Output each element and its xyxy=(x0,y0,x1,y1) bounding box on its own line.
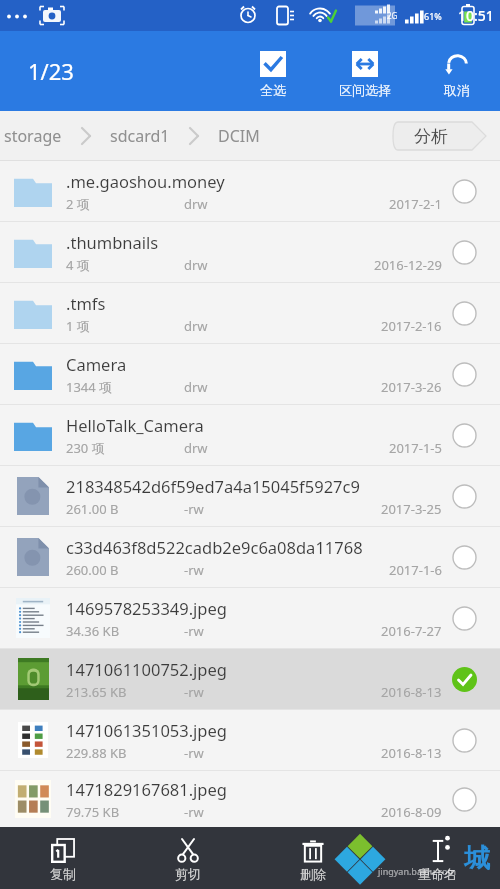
staticText: Camera xyxy=(66,353,127,375)
staticText: 260.00 B xyxy=(66,561,119,579)
staticText: -rw xyxy=(184,500,204,518)
button[interactable]: Selected xyxy=(442,657,486,701)
staticText: 取消 xyxy=(444,82,470,98)
staticText: 229.88 KB xyxy=(66,744,127,762)
staticText: .thumbnails xyxy=(66,231,159,253)
button[interactable]: 取消 xyxy=(414,31,500,111)
button[interactable]: Select xyxy=(442,291,486,335)
button[interactable]: storage xyxy=(0,125,66,147)
staticText: 2 项 xyxy=(66,195,90,213)
staticText: 79.75 KB xyxy=(66,803,120,821)
staticText: drw xyxy=(184,439,208,457)
staticText: 230 项 xyxy=(66,439,105,457)
button[interactable]: .tmfs xyxy=(0,283,500,343)
staticText: .tmfs xyxy=(66,292,106,314)
button[interactable]: 218348542d6f59ed7a4a15045f5927c9 xyxy=(0,466,500,526)
button[interactable]: Select xyxy=(442,230,486,274)
staticText: 213.65 KB xyxy=(66,683,127,701)
staticText: 全选 xyxy=(260,82,286,98)
button[interactable]: Cut xyxy=(125,827,250,889)
button[interactable]: Copy xyxy=(0,827,125,889)
staticText: 2016-7-27 xyxy=(381,622,442,640)
staticText: 删除 xyxy=(300,866,326,882)
staticText: .me.gaoshou.money xyxy=(66,170,225,192)
staticText: 2017-2-16 xyxy=(381,317,442,335)
staticText: 61% xyxy=(424,10,442,22)
staticText: 重命名 xyxy=(418,866,457,882)
staticText: 218348542d6f59ed7a4a15045f5927c9 xyxy=(66,475,360,497)
button[interactable]: 1471061351053.jpeg xyxy=(0,710,500,770)
staticText: drw xyxy=(184,195,208,213)
button[interactable]: Select xyxy=(442,352,486,396)
button[interactable]: 1469578253349.jpeg xyxy=(0,588,500,648)
staticText: 4 项 xyxy=(66,256,90,274)
staticText: 10:51 xyxy=(458,6,494,25)
button[interactable]: sdcard1 xyxy=(106,125,174,147)
staticText: 城 xyxy=(464,842,490,875)
staticText: 2017-2-1 xyxy=(389,195,442,213)
button[interactable]: Camera xyxy=(0,344,500,404)
button[interactable]: Rename xyxy=(375,827,500,889)
staticText: 1469578253349.jpeg xyxy=(66,597,227,619)
button[interactable]: .thumbnails xyxy=(0,222,500,282)
button[interactable]: DCIM xyxy=(214,125,264,147)
staticText: HelloTalk_Camera xyxy=(66,414,204,436)
staticText: -rw xyxy=(184,744,204,762)
button[interactable]: HelloTalk_Camera xyxy=(0,405,500,465)
staticText: 2G xyxy=(387,10,398,21)
staticText: 区间选择 xyxy=(339,82,391,98)
button[interactable]: 全选 xyxy=(230,31,315,111)
button[interactable]: Select xyxy=(442,474,486,518)
staticText: DCIM xyxy=(218,125,260,147)
staticText: 1471829167681.jpeg xyxy=(66,778,227,800)
staticText: 2016-8-13 xyxy=(381,744,442,762)
staticText: -rw xyxy=(184,561,204,579)
staticText: 1 项 xyxy=(66,317,90,335)
staticText: 1471061100752.jpeg xyxy=(66,658,227,680)
staticText: 1344 项 xyxy=(66,378,113,396)
button[interactable]: Select xyxy=(442,535,486,579)
button[interactable]: 1471061100752.jpeg xyxy=(0,649,500,709)
staticText: drw xyxy=(184,256,208,274)
button[interactable]: .me.gaoshou.money xyxy=(0,161,500,221)
button[interactable]: 分析 xyxy=(392,119,488,153)
button[interactable]: Select xyxy=(442,718,486,762)
other: Rename xyxy=(426,839,450,863)
staticText: 2017-3-26 xyxy=(381,378,442,396)
button[interactable]: c33d463f8d522cadb2e9c6a08da11768 xyxy=(0,527,500,587)
staticText: c33d463f8d522cadb2e9c6a08da11768 xyxy=(66,536,363,558)
other: Cut xyxy=(176,839,200,863)
button[interactable]: Delete xyxy=(250,827,375,889)
staticText: 2016-12-29 xyxy=(374,256,442,274)
staticText: 2017-3-25 xyxy=(381,500,442,518)
button[interactable]: Select xyxy=(442,596,486,640)
other: Copy xyxy=(51,839,75,863)
button[interactable]: Select xyxy=(442,777,486,821)
staticText: 剪切 xyxy=(175,866,201,882)
button[interactable]: 区间选择 xyxy=(315,31,414,111)
staticText: storage xyxy=(4,125,62,147)
staticText: 1471061351053.jpeg xyxy=(66,719,227,741)
staticText: 2017-1-6 xyxy=(389,561,442,579)
staticText: drw xyxy=(184,317,208,335)
button[interactable]: Select xyxy=(442,413,486,457)
staticText: 2017-1-5 xyxy=(389,439,442,457)
button[interactable]: 1471829167681.jpeg xyxy=(0,771,500,827)
staticText: 复制 xyxy=(50,866,76,882)
staticText: -rw xyxy=(184,683,204,701)
staticText: 1/23 xyxy=(28,56,74,86)
staticText: 261.00 B xyxy=(66,500,119,518)
other: Delete xyxy=(301,839,325,863)
staticText: 2016-8-09 xyxy=(381,803,442,821)
staticText: 2016-8-13 xyxy=(381,683,442,701)
staticText: sdcard1 xyxy=(110,125,170,147)
staticText: -rw xyxy=(184,803,204,821)
staticText: jingyan.baidu.com xyxy=(378,865,456,877)
button[interactable]: Select xyxy=(442,169,486,213)
staticText: drw xyxy=(184,378,208,396)
staticText: 34.36 KB xyxy=(66,622,120,640)
staticText: 分析 xyxy=(414,126,448,147)
staticText: -rw xyxy=(184,622,204,640)
